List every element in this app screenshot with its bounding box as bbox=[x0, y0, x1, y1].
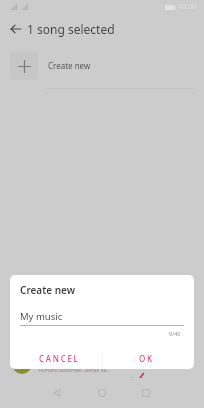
button[interactable]: Create new bbox=[0, 42, 204, 89]
button[interactable]: Home bbox=[98, 389, 106, 397]
staticText: Create new bbox=[20, 283, 76, 297]
staticText: Richard Stoltzman, Slovak Ra... bbox=[39, 367, 111, 374]
staticText: 1 song selected bbox=[27, 21, 115, 37]
staticText: OK bbox=[139, 353, 154, 364]
button[interactable]: Back bbox=[3, 16, 29, 42]
staticText: Create new bbox=[48, 60, 91, 71]
button[interactable]: Back bbox=[53, 389, 61, 397]
button[interactable]: CANCEL bbox=[10, 347, 102, 369]
button[interactable]: Recents bbox=[142, 389, 150, 397]
staticText: 10:00 bbox=[178, 2, 196, 12]
staticText: CANCEL bbox=[39, 353, 80, 364]
staticText: 9/40 bbox=[169, 330, 181, 337]
button[interactable]: OK bbox=[102, 347, 194, 369]
staticText: My music bbox=[20, 310, 63, 323]
